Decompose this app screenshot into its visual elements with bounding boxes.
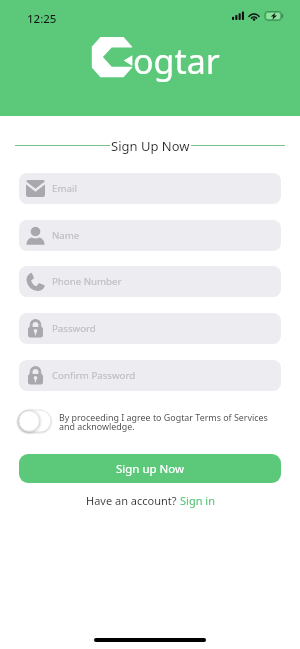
button[interactable]: Sign up Now [19,454,281,483]
staticText: Email [52,182,77,195]
staticText: Password [52,322,96,335]
staticText: By proceeding I agree to Gogtar Terms of… [59,411,268,423]
button[interactable]: Name [19,220,281,251]
staticText: Name [52,229,80,242]
button[interactable]: Password [19,313,281,344]
button[interactable]: Agree to terms toggle [18,410,51,432]
staticText: and acknowledge. [59,420,135,432]
staticText: Sign Up Now [111,137,190,155]
staticText: Phone Number [52,275,122,288]
staticText: Have an account? [86,493,180,508]
staticText: Sign up Now [116,461,185,477]
button[interactable]: Phone Number [19,266,281,297]
staticText: 12:25 [27,11,57,27]
staticText: Confirm Password [52,369,136,382]
button[interactable]: Sign in [180,493,215,508]
button[interactable]: Confirm Password [19,360,281,391]
staticText: ogtar [133,38,220,84]
button[interactable]: Email [19,173,281,204]
